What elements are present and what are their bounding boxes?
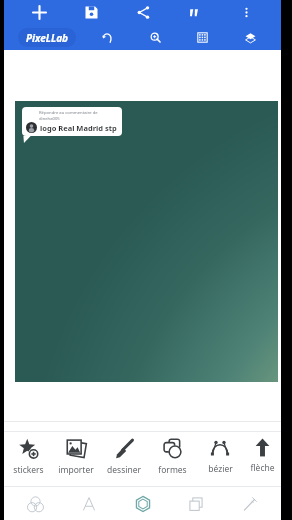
button[interactable]: Layers (173, 488, 219, 520)
button[interactable]: Shapes (120, 488, 166, 520)
staticText: stickers (13, 464, 44, 476)
staticText: bézier (208, 463, 233, 475)
button[interactable]: flèche (244, 432, 281, 474)
button[interactable]: Grid (185, 25, 219, 50)
staticText: formes (158, 464, 187, 476)
button[interactable]: Undo (90, 25, 124, 50)
button[interactable]: Effects (227, 488, 273, 520)
staticText: dessiner (107, 464, 141, 476)
staticText: PixeLLab (26, 31, 69, 45)
button[interactable]: Add (22, 0, 56, 25)
button[interactable]: Zoom (138, 25, 172, 50)
staticText: importer (58, 464, 94, 476)
button[interactable]: Share (126, 0, 160, 25)
button[interactable]: Text (66, 488, 112, 520)
staticText: logo Real Madrid stp (40, 123, 117, 133)
button[interactable]: dessiner (100, 432, 148, 476)
button[interactable]: Blend (12, 488, 58, 520)
button[interactable]: Quote (177, 0, 211, 25)
button[interactable]: bézier (196, 432, 244, 475)
button[interactable]: importer (52, 432, 100, 476)
button[interactable]: stickers (4, 432, 52, 476)
button[interactable]: formes (148, 432, 196, 476)
staticText: flèche (250, 462, 275, 474)
button[interactable]: Layers (233, 25, 267, 50)
staticText: Répondre au commentaire de dineha005 (39, 110, 98, 121)
button[interactable]: PixelLab (18, 28, 76, 47)
button[interactable]: Save (74, 0, 108, 25)
button[interactable]: More options (229, 0, 263, 25)
button[interactable]: Image canvas (15, 101, 278, 382)
